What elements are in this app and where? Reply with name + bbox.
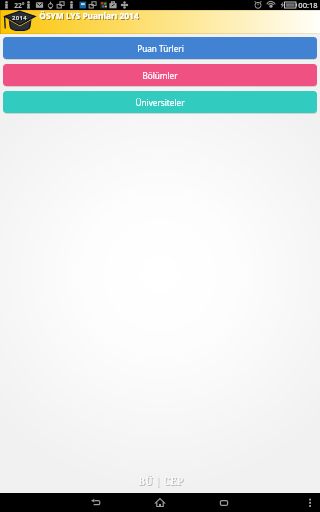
staticText: BÜ | CEP — [139, 475, 184, 489]
staticText: BÜ | CEP — [138, 474, 183, 488]
button[interactable]: Bölümler — [3, 64, 317, 86]
staticText: 2014 — [12, 14, 27, 22]
staticText: ÖSYM LYS Puanları 2014 — [39, 10, 139, 21]
button[interactable]: Recent apps — [213, 493, 288, 512]
staticText: 2014 — [13, 15, 28, 23]
staticText: Üniversiteler — [135, 97, 185, 108]
button[interactable]: More options — [288, 493, 320, 512]
staticText: BÜ | CEP — [138, 474, 183, 488]
button[interactable]: Back — [64, 493, 138, 512]
staticText: Bölümler — [142, 70, 178, 81]
staticText: 00:18 — [298, 0, 318, 10]
button[interactable]: Home — [138, 493, 213, 512]
staticText: ÖSYM LYS Puanları 2014 — [40, 11, 140, 22]
staticText: 22° — [14, 1, 25, 10]
staticText: Puan Türleri — [137, 43, 184, 54]
button[interactable]: Puan Türleri — [3, 37, 317, 59]
button[interactable]: Üniversiteler — [3, 91, 317, 113]
